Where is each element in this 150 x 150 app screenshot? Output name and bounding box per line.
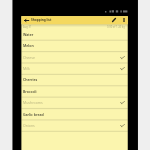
staticText: Melon	[23, 43, 34, 48]
staticText: Mushrooms	[23, 100, 43, 105]
button[interactable]: More options	[120, 16, 127, 24]
button[interactable]: Navigate up	[22, 16, 30, 24]
staticText: Garlic bread	[23, 112, 44, 117]
staticText: Aug 31	[23, 25, 32, 29]
staticText: Cheese	[23, 55, 35, 60]
staticText: Onions	[23, 123, 35, 128]
button[interactable]: Water	[21, 29, 127, 40]
button[interactable]: Mushrooms	[21, 97, 127, 108]
button[interactable]: Garlic bread	[21, 109, 127, 120]
staticText: Milk	[23, 66, 30, 71]
button[interactable]: Cheese	[21, 52, 127, 63]
staticText: Cherries	[23, 77, 38, 82]
button[interactable]: Edit list	[110, 16, 118, 24]
button[interactable]: Cherries	[21, 74, 127, 85]
button[interactable]: Milk	[21, 63, 127, 74]
staticText: Shopping list	[31, 18, 52, 22]
button[interactable]: Onions	[21, 120, 127, 131]
button[interactable]: Broccoli	[21, 86, 127, 97]
staticText: Water	[23, 32, 34, 37]
staticText: 0.00 of 1.24 kg	[107, 25, 125, 29]
button[interactable]: Melon	[21, 40, 127, 51]
staticText: Broccoli	[23, 89, 37, 94]
